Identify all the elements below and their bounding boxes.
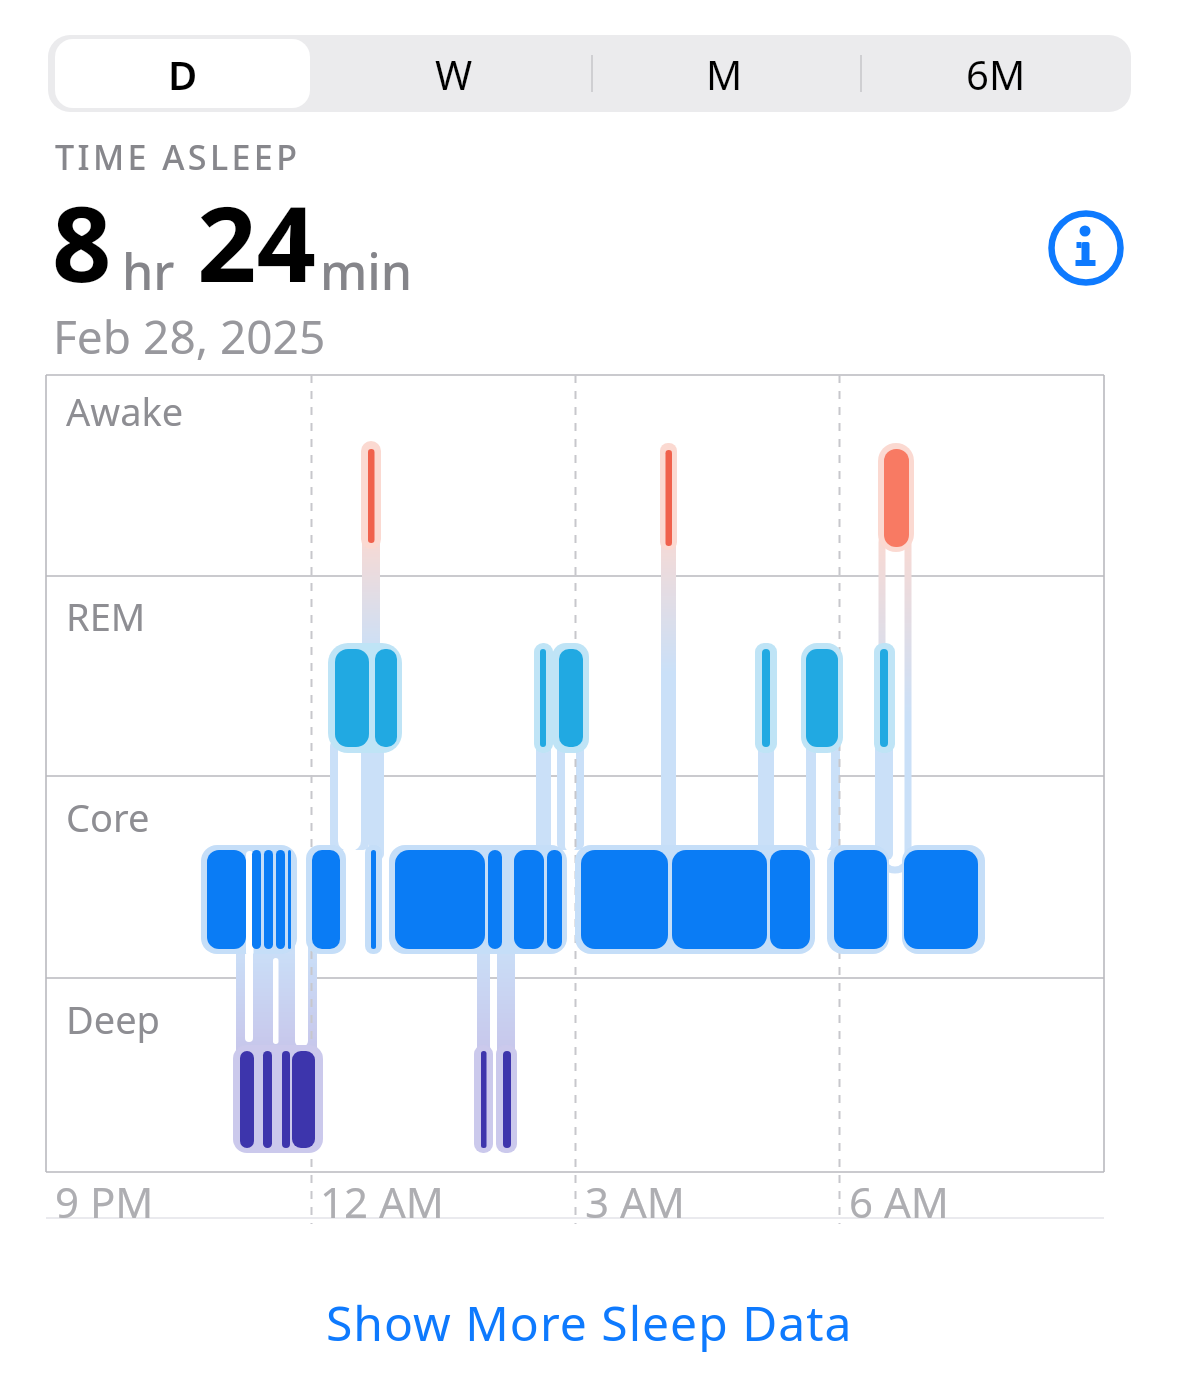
button[interactable]: M: [589, 35, 860, 112]
staticText: 3 AM: [585, 1173, 685, 1230]
staticText: Core: [66, 791, 150, 843]
staticText: Deep: [66, 993, 160, 1045]
staticText: REM: [66, 590, 146, 642]
staticText: hr: [122, 237, 175, 305]
staticText: min: [320, 237, 413, 305]
staticText: 6 AM: [849, 1173, 949, 1230]
staticText: Awake: [66, 385, 184, 437]
button[interactable]: 6M: [860, 35, 1131, 112]
staticText: Show More Sleep Data: [326, 1290, 853, 1355]
staticText: 6M: [966, 47, 1026, 101]
button[interactable]: D: [48, 35, 318, 112]
button[interactable]: [1048, 210, 1124, 286]
staticText: 9 PM: [55, 1173, 154, 1230]
staticText: 24: [197, 171, 316, 313]
staticText: TIME ASLEEP: [55, 134, 301, 180]
staticText: 12 AM: [320, 1173, 444, 1230]
staticText: W: [435, 47, 473, 101]
staticText: D: [168, 47, 198, 101]
staticText: 8: [52, 171, 112, 313]
staticText: Feb 28, 2025: [53, 305, 326, 368]
staticText: M: [706, 47, 743, 101]
button[interactable]: Show More Sleep Data: [318, 1282, 861, 1363]
button[interactable]: W: [318, 35, 589, 112]
button[interactable]: [55, 39, 310, 108]
